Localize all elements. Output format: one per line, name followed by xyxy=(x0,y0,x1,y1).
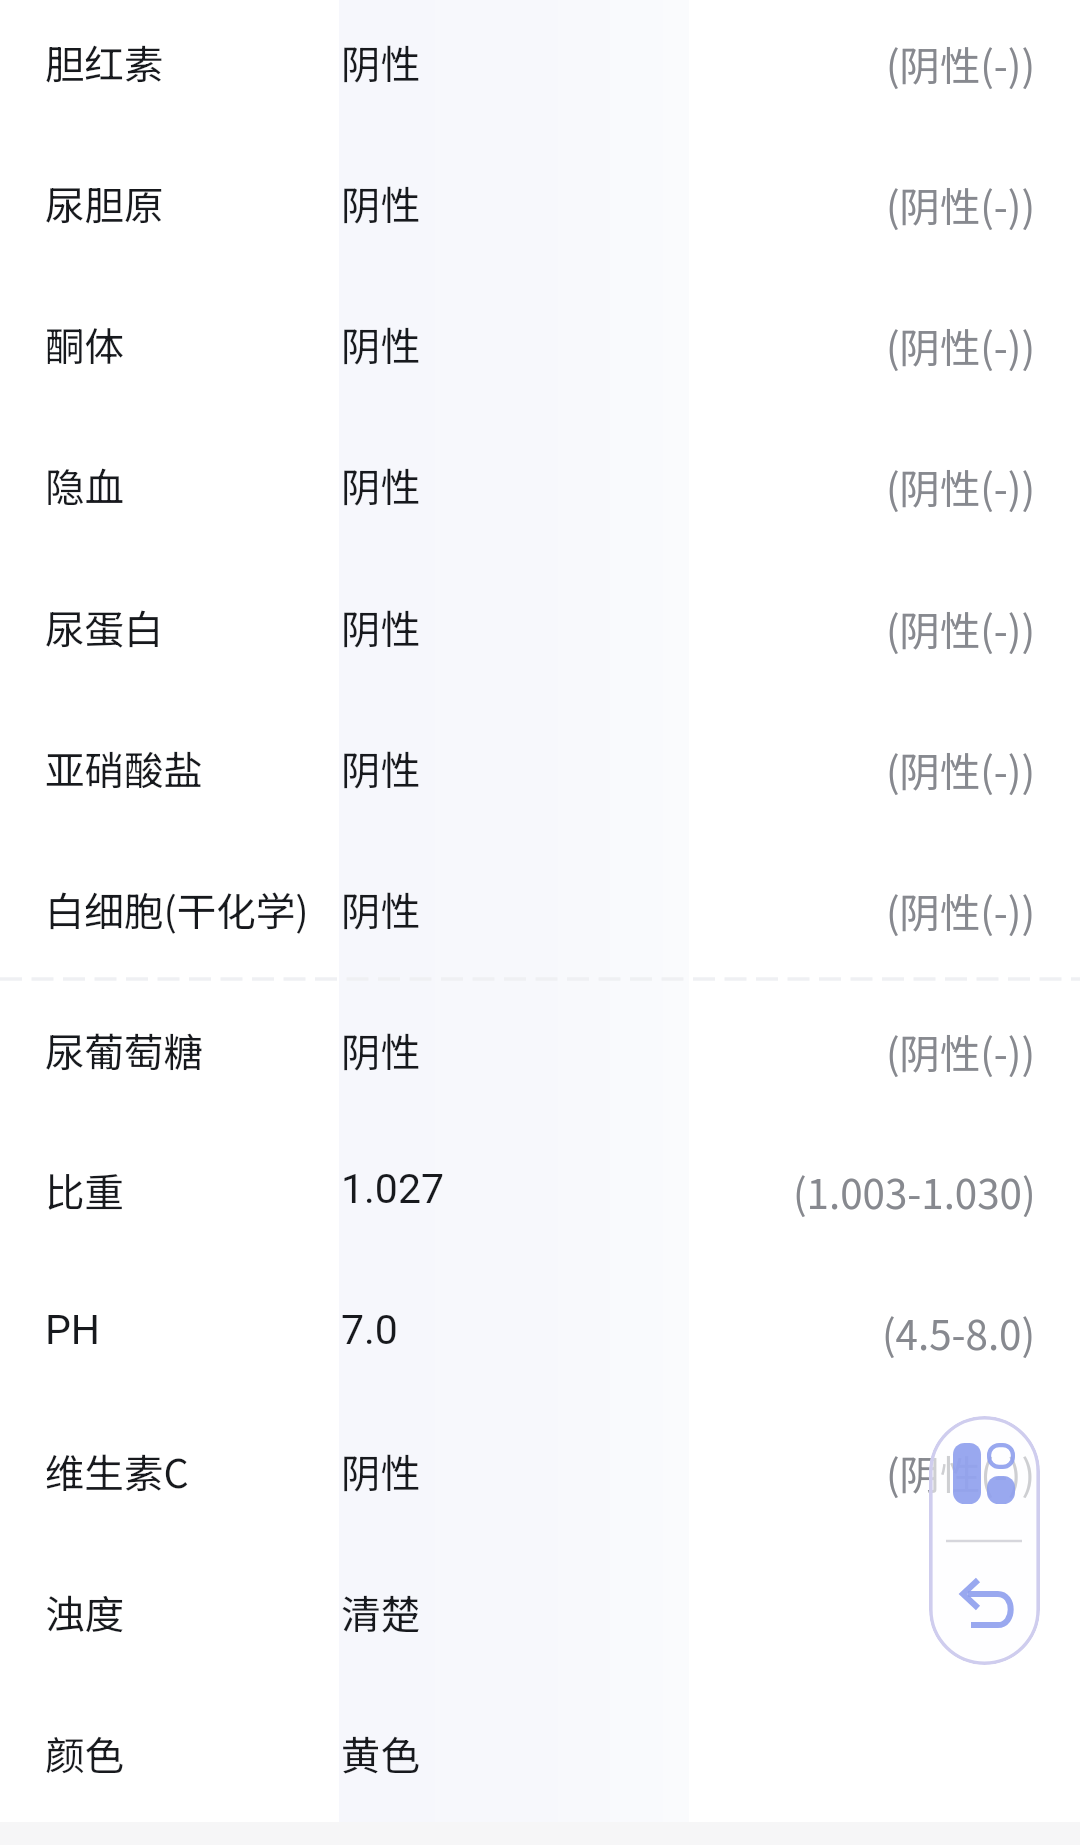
staticText: 阴性 xyxy=(341,1442,420,1499)
button[interactable]: Back xyxy=(929,1541,1040,1665)
button[interactable]: 尿胆原 xyxy=(0,132,1080,272)
staticText: 阴性 xyxy=(341,33,420,90)
staticText: 尿蛋白 xyxy=(45,598,164,655)
staticText: 颜色 xyxy=(45,1724,124,1781)
staticText: (阴性(-)) xyxy=(886,457,1036,515)
staticText: 尿葡萄糖 xyxy=(45,1021,203,1078)
button[interactable]: 比重 xyxy=(0,1119,1080,1259)
button[interactable]: 白细胞(干化学) xyxy=(0,838,1080,978)
staticText: 浊度 xyxy=(45,1583,124,1640)
button[interactable]: 浊度 xyxy=(0,1541,1080,1681)
staticText: 胆红素 xyxy=(45,33,164,90)
staticText: 阴性 xyxy=(341,880,420,937)
button[interactable]: 颜色 xyxy=(0,1682,1080,1822)
button[interactable]: 尿葡萄糖 xyxy=(0,979,1080,1119)
staticText: 阴性 xyxy=(341,174,420,231)
staticText: 阴性 xyxy=(341,598,420,655)
staticText: 比重 xyxy=(45,1161,124,1218)
button[interactable]: 酮体 xyxy=(0,273,1080,413)
staticText: (阴性(-)) xyxy=(886,881,1036,939)
staticText: 黄色 xyxy=(341,1724,420,1781)
button[interactable]: PH xyxy=(0,1260,1080,1400)
staticText: 亚硝酸盐 xyxy=(45,739,203,796)
button[interactable]: Recent apps xyxy=(929,1416,1040,1541)
button[interactable]: 维生素C xyxy=(0,1400,1080,1540)
staticText: (4.5-8.0) xyxy=(882,1303,1036,1361)
staticText: (1.003-1.030) xyxy=(793,1162,1036,1220)
button[interactable]: 尿蛋白 xyxy=(0,556,1080,696)
staticText: 阴性 xyxy=(341,315,420,372)
staticText: 尿胆原 xyxy=(45,174,164,231)
staticText: 维生素C xyxy=(45,1442,189,1499)
staticText: (阴性(-)) xyxy=(886,1443,1036,1501)
button[interactable]: 隐血 xyxy=(0,414,1080,554)
staticText: (阴性(-)) xyxy=(886,316,1036,374)
staticText: 隐血 xyxy=(45,456,124,513)
staticText: 阴性 xyxy=(341,456,420,513)
staticText: 1.027 xyxy=(341,1165,444,1213)
staticText: (阴性(-)) xyxy=(886,34,1036,92)
staticText: 白细胞(干化学) xyxy=(45,880,309,937)
staticText: 阴性 xyxy=(341,739,420,796)
button[interactable]: 胆红素 xyxy=(0,0,1080,131)
button[interactable]: 亚硝酸盐 xyxy=(0,697,1080,837)
staticText: (阴性(-)) xyxy=(886,1022,1036,1080)
staticText: (阴性(-)) xyxy=(886,599,1036,657)
staticText: PH xyxy=(45,1306,101,1354)
staticText: (阴性(-)) xyxy=(886,740,1036,798)
staticText: 清楚 xyxy=(341,1583,420,1640)
staticText: 7.0 xyxy=(341,1306,398,1354)
staticText: 阴性 xyxy=(341,1021,420,1078)
staticText: 酮体 xyxy=(45,315,124,372)
staticText: (阴性(-)) xyxy=(886,175,1036,233)
